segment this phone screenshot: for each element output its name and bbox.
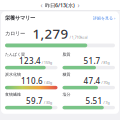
staticText: 栄養サマリー [5,15,35,21]
staticText: 炭水化物 [5,72,21,77]
staticText: カロリー [5,30,25,37]
staticText: / 1,710kcal [69,34,87,40]
staticText: 5.51 [86,95,103,106]
staticText: / 30g [44,100,52,105]
staticText: / 81g [101,60,109,65]
staticText: 51.7 [84,55,101,66]
staticText: 110.6 [21,75,43,86]
staticText: / 7g [103,100,109,105]
staticText: 塩分 [62,92,70,97]
staticText: / 70g [101,80,109,85]
staticText: たんぱく質 [5,52,25,57]
staticText: 123.4 [19,55,41,66]
staticText: / 159g [42,60,52,65]
staticText: 糖質 [62,72,70,77]
button[interactable]: 詳細を見る › [93,15,115,21]
staticText: 昨日6/13(水) [45,2,75,9]
staticText: › [77,1,79,10]
staticText: 食物繊維 [5,92,21,97]
staticText: 59.7 [26,95,43,106]
button[interactable]: 昨日6/13(水) [45,2,75,9]
staticText: 47.4 [84,75,101,86]
staticText: 1,279 [32,25,68,42]
staticText: / 40g [44,80,52,85]
staticText: 脂質 [62,52,70,57]
staticText: ‹ [40,1,42,10]
button[interactable]: 次の日 [77,1,79,10]
button[interactable]: 前の日 [40,1,42,10]
staticText: 詳細を見る › [93,15,115,21]
